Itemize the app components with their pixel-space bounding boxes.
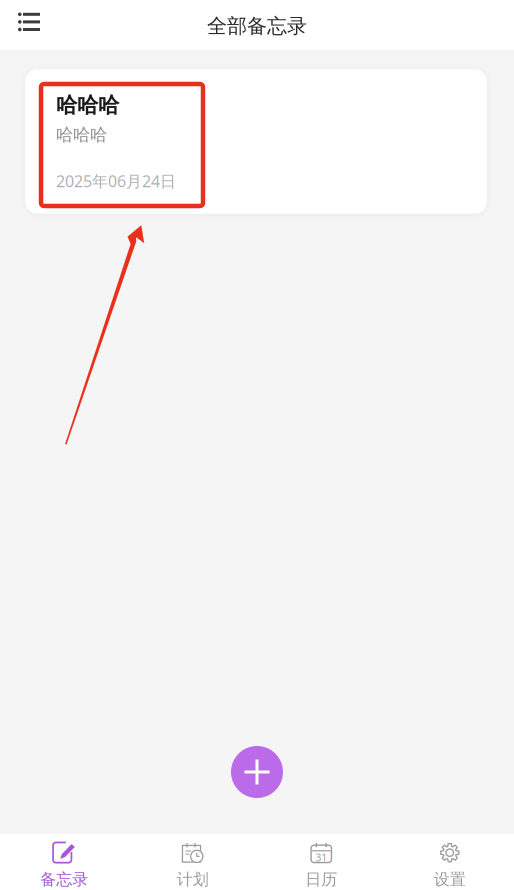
button[interactable]: New note xyxy=(231,746,283,798)
button[interactable]: 设置 xyxy=(385,831,514,890)
staticText: 2025年06月24日 xyxy=(56,170,176,192)
staticText: 哈哈哈 xyxy=(56,92,119,118)
staticText: 31 xyxy=(315,850,327,864)
button[interactable]: 31 xyxy=(257,831,385,890)
staticText: 备忘录 xyxy=(40,870,88,889)
button[interactable]: 备忘录 xyxy=(0,831,128,890)
button[interactable]: 哈哈哈 xyxy=(25,69,487,214)
staticText: 设置 xyxy=(434,870,466,889)
staticText: 哈哈哈 xyxy=(56,124,107,145)
staticText: 计划 xyxy=(177,870,209,889)
staticText: 全部备忘录 xyxy=(207,14,307,38)
button[interactable]: 计划 xyxy=(128,831,257,890)
staticText: 日历 xyxy=(305,870,337,889)
button[interactable]: Menu xyxy=(0,3,54,46)
